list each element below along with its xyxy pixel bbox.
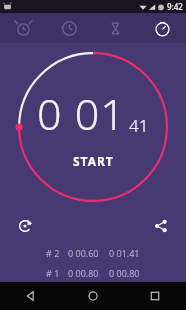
staticText: 9:42 xyxy=(167,1,183,12)
button[interactable]: Share xyxy=(148,213,174,239)
staticText: 0 01.41 xyxy=(109,247,140,259)
button[interactable]: Timer xyxy=(92,13,139,43)
button[interactable]: Alarm xyxy=(0,13,46,43)
staticText: 0 00.80 xyxy=(68,267,99,279)
button[interactable]: Reset xyxy=(12,213,38,239)
button[interactable]: Stopwatch xyxy=(139,13,186,43)
button[interactable]: Recents xyxy=(124,282,186,310)
staticText: # 2 xyxy=(46,247,60,259)
staticText: # 1 xyxy=(46,267,60,279)
staticText: 0 00.60 xyxy=(68,247,99,259)
button[interactable]: Back xyxy=(0,282,62,310)
staticText: 0 01 xyxy=(37,84,126,143)
button[interactable]: Home xyxy=(62,282,124,310)
staticText: START xyxy=(73,153,114,169)
staticText: 0 00.80 xyxy=(109,267,140,279)
button[interactable]: # 2 xyxy=(40,246,146,260)
button[interactable]: START xyxy=(63,151,124,171)
button[interactable]: Clock xyxy=(46,13,92,43)
button[interactable]: # 1 xyxy=(40,266,146,280)
staticText: 41 xyxy=(129,114,149,137)
